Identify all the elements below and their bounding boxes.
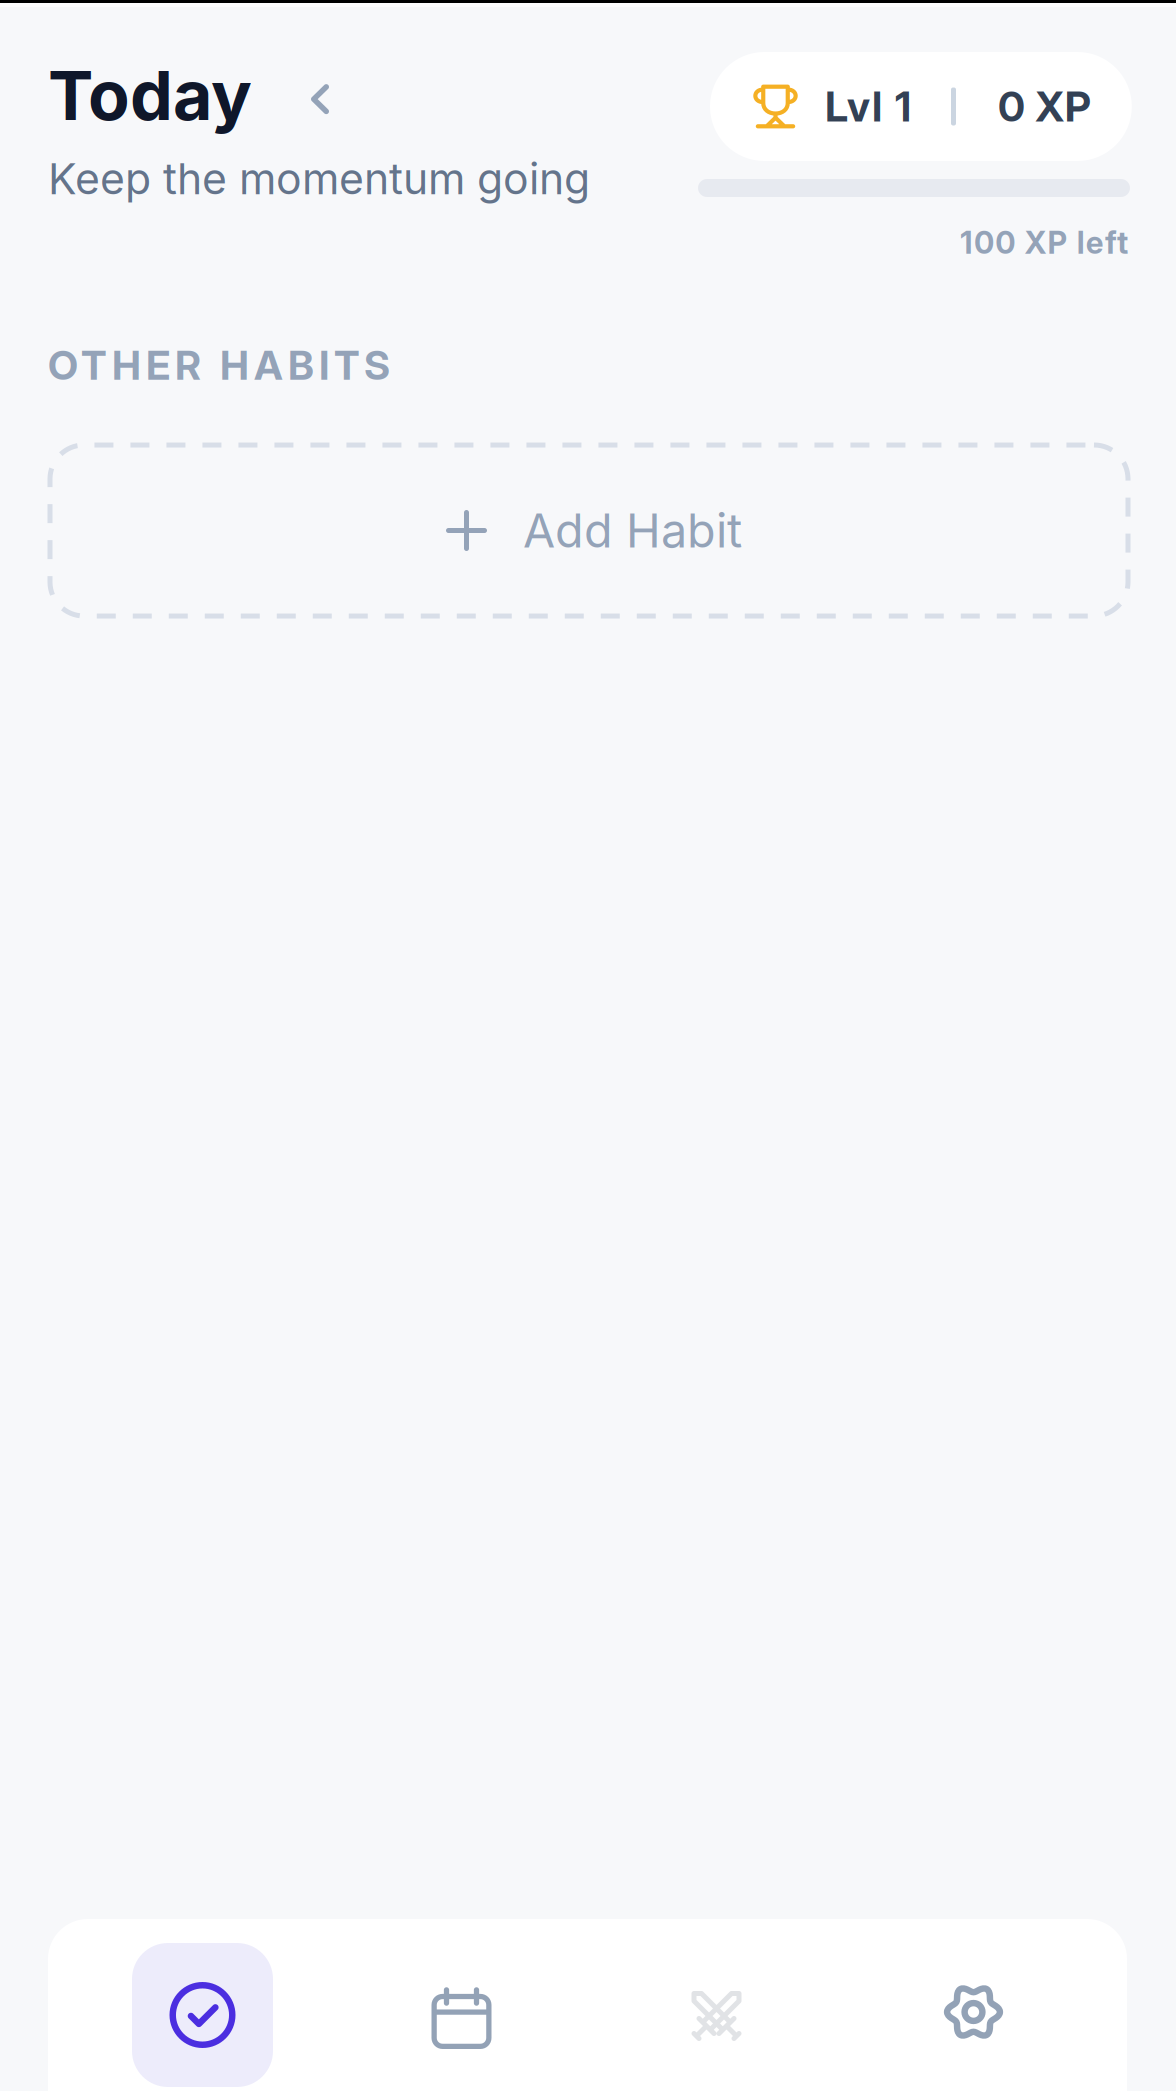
button[interactable]: Calendar [389, 1943, 530, 2087]
button[interactable]: Lvl 1 [710, 52, 1132, 161]
staticText: Today [48, 54, 252, 136]
button[interactable]: Today [132, 1943, 273, 2087]
button[interactable]: Add Habit [50, 445, 1128, 616]
staticText: Add Habit [523, 502, 742, 559]
staticText: OTHER HABITS [48, 341, 390, 389]
staticText: 100 XP left [960, 224, 1128, 261]
staticText: 0 XP [998, 81, 1091, 131]
staticText: Keep the momentum going [48, 153, 590, 205]
staticText: Lvl 1 [825, 81, 911, 131]
button[interactable]: Back [292, 64, 354, 126]
button[interactable]: Settings [903, 1943, 1044, 2087]
button[interactable]: Battles [646, 1943, 787, 2087]
